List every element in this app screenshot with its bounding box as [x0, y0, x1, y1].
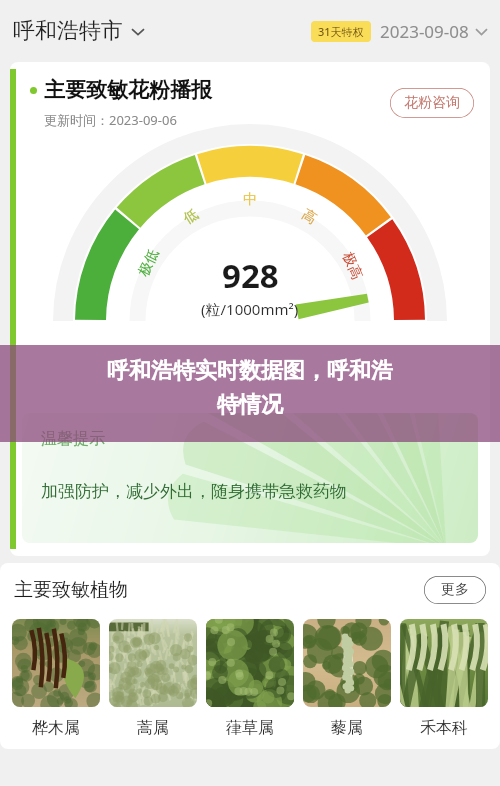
- staticText: 蒿属: [137, 718, 169, 738]
- staticText: 呼和浩特市: [13, 17, 123, 45]
- button[interactable]: 蒿属: [109, 619, 197, 738]
- button[interactable]: 呼和浩特市: [13, 11, 144, 51]
- staticText: 31天特权: [318, 24, 364, 39]
- staticText: 藜属: [331, 718, 363, 738]
- staticText: 低: [180, 206, 202, 228]
- staticText: 2023-09-08: [380, 20, 469, 43]
- other: 蒿属: [109, 619, 197, 707]
- button[interactable]: 禾本科: [400, 619, 488, 738]
- other: 藜属: [303, 619, 391, 707]
- button[interactable]: 花粉咨询: [390, 88, 474, 118]
- staticText: 中: [243, 191, 257, 209]
- staticText: 桦木属: [32, 718, 80, 738]
- staticText: 主要致敏花粉播报: [44, 77, 212, 103]
- staticText: 禾本科: [420, 718, 468, 738]
- button[interactable]: 葎草属: [206, 619, 294, 738]
- staticText: 928: [222, 253, 279, 298]
- other: 桦木属: [12, 619, 100, 707]
- staticText: 葎草属: [226, 718, 274, 738]
- staticText: 花粉咨询: [404, 94, 460, 112]
- staticText: (粒/1000mm²): [201, 299, 299, 319]
- button[interactable]: 更多: [424, 576, 486, 604]
- staticText: 加强防护，减少外出，随身携带急救药物: [41, 481, 347, 502]
- button[interactable]: 2023-09-08: [380, 14, 487, 49]
- other: 葎草属: [206, 619, 294, 707]
- staticText: 极高: [338, 249, 366, 282]
- staticText: 呼和浩特实时数据图，呼和浩 特情况: [36, 357, 464, 419]
- staticText: 更多: [441, 581, 469, 599]
- staticText: 温馨提示: [41, 429, 105, 449]
- staticText: 极低: [135, 246, 163, 280]
- button[interactable]: 31天特权: [311, 21, 371, 42]
- staticText: 高: [298, 206, 320, 228]
- button[interactable]: 藜属: [303, 619, 391, 738]
- button[interactable]: 桦木属: [12, 619, 100, 738]
- staticText: 更新时间：2023-09-06: [44, 111, 177, 129]
- other: 禾本科: [400, 619, 488, 707]
- staticText: 主要致敏植物: [14, 578, 128, 602]
